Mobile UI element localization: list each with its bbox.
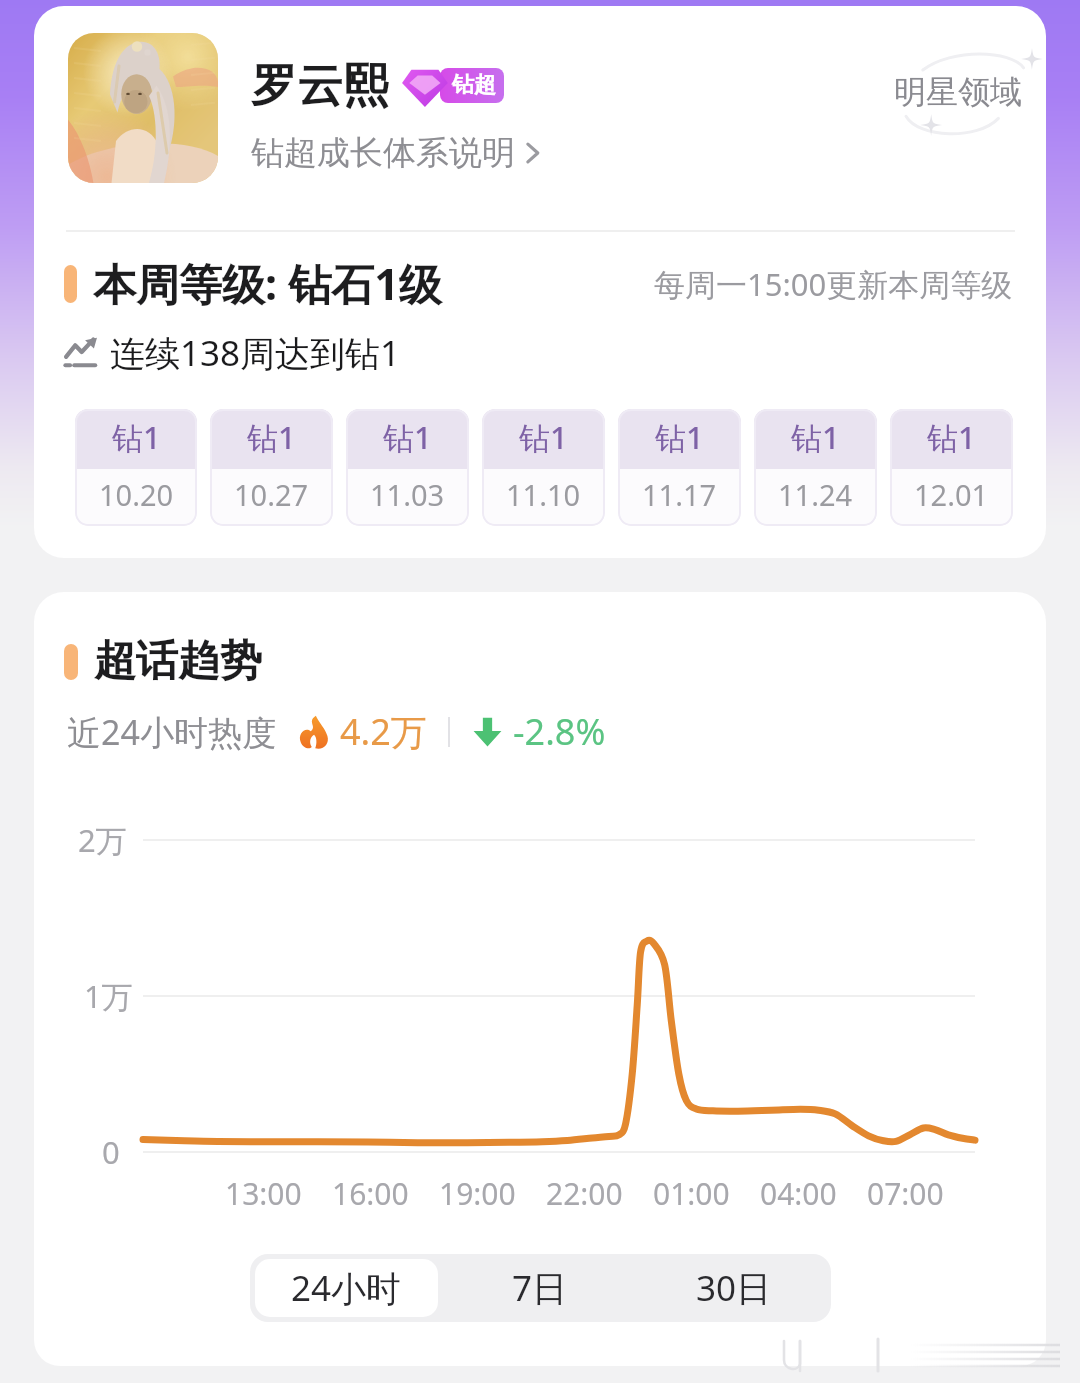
- button[interactable]: 钻1: [618, 409, 741, 526]
- staticText: 0: [102, 1131, 120, 1173]
- staticText: 明星领域: [894, 72, 1022, 112]
- staticText: 4.2万: [340, 707, 427, 756]
- button[interactable]: 钻超成长体系说明: [251, 132, 541, 174]
- staticText: 钻1: [927, 416, 976, 458]
- button[interactable]: 钻1: [75, 409, 197, 526]
- button[interactable]: 钻1: [754, 409, 877, 526]
- staticText: 10.27: [234, 475, 309, 514]
- button[interactable]: 罗云熙 头像: [68, 33, 218, 183]
- staticText: 19:00: [439, 1173, 516, 1214]
- staticText: 16:00: [332, 1173, 409, 1214]
- button[interactable]: 30日: [642, 1259, 826, 1317]
- staticText: 钻1: [519, 416, 568, 458]
- staticText: 11.03: [370, 475, 445, 514]
- staticText: 07:00: [867, 1173, 944, 1214]
- staticText: 超话趋势: [94, 635, 262, 688]
- staticText: 2万: [78, 819, 127, 861]
- staticText: 每周一15:00更新本周等级: [654, 263, 1013, 305]
- staticText: 钻1: [383, 416, 432, 458]
- button[interactable]: 钻1: [890, 409, 1013, 526]
- button[interactable]: 7日: [448, 1259, 632, 1317]
- staticText: 钻超: [452, 71, 496, 99]
- staticText: 22:00: [546, 1173, 623, 1214]
- staticText: 04:00: [760, 1173, 837, 1214]
- staticText: -2.8%: [513, 707, 606, 756]
- button[interactable]: 24小时: [255, 1259, 438, 1317]
- staticText: 12.01: [914, 475, 989, 514]
- staticText: 钻1: [655, 416, 704, 458]
- staticText: 钻超成长体系说明: [251, 132, 515, 174]
- button[interactable]: 钻1: [210, 409, 333, 526]
- staticText: 13:00: [225, 1173, 302, 1214]
- button[interactable]: 罗云熙: [251, 57, 509, 115]
- staticText: 近24小时热度: [67, 709, 276, 755]
- staticText: 11.17: [642, 475, 717, 514]
- button[interactable]: 明星领域: [843, 37, 1046, 147]
- staticText: 11.24: [778, 475, 853, 514]
- staticText: 11.10: [506, 475, 581, 514]
- staticText: 7日: [512, 1264, 568, 1312]
- staticText: 30日: [696, 1264, 772, 1312]
- staticText: 本周等级: 钻石1级: [93, 254, 442, 313]
- staticText: 钻1: [791, 416, 840, 458]
- button[interactable]: 钻1: [482, 409, 605, 526]
- staticText: 连续138周达到钻1: [110, 329, 401, 377]
- staticText: 罗云熙: [251, 57, 389, 115]
- staticText: 钻1: [112, 416, 161, 458]
- staticText: 10.20: [99, 475, 174, 514]
- staticText: 01:00: [653, 1173, 730, 1214]
- button[interactable]: 钻1: [346, 409, 469, 526]
- staticText: 1万: [84, 975, 133, 1017]
- staticText: 24小时: [291, 1264, 402, 1312]
- staticText: 钻1: [247, 416, 296, 458]
